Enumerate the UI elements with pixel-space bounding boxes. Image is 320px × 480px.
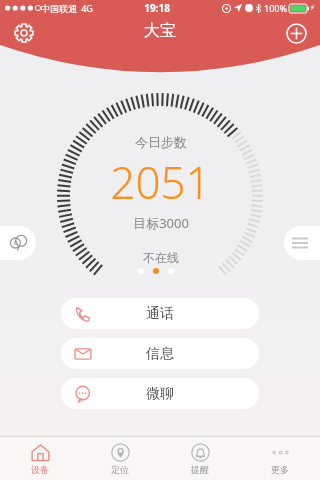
button[interactable]: Settings xyxy=(10,19,38,47)
button[interactable]: 提醒 xyxy=(160,437,240,480)
button[interactable]: 通话 xyxy=(61,298,259,329)
staticText: 中国联通 xyxy=(41,3,77,14)
staticText: 4G xyxy=(81,2,93,14)
staticText: 微聊 xyxy=(146,385,174,403)
staticText: 通话 xyxy=(146,305,174,323)
staticText: 定位 xyxy=(111,464,129,475)
staticText: 目标3000 xyxy=(133,214,189,232)
button[interactable]: Add device xyxy=(282,19,310,47)
button[interactable]: 定位 xyxy=(80,437,160,480)
button[interactable]: 微聊 xyxy=(61,378,259,409)
staticText: 更多 xyxy=(271,464,289,475)
button[interactable]: 设备 xyxy=(0,437,80,480)
staticText: 提醒 xyxy=(191,464,209,475)
staticText: 大宝 xyxy=(144,21,176,41)
staticText: 2051 xyxy=(110,152,211,212)
button[interactable]: 更多 xyxy=(240,437,320,480)
staticText: 信息 xyxy=(146,345,174,363)
button[interactable]: Menu xyxy=(284,226,320,260)
staticText: 100% xyxy=(264,2,287,14)
staticText: 不在线 xyxy=(143,250,179,265)
staticText: 19:18 xyxy=(144,1,170,15)
staticText: ⚡ xyxy=(310,4,315,12)
staticText: 今日步数 xyxy=(135,134,187,150)
button[interactable]: Previous device xyxy=(0,226,36,260)
button[interactable]: 信息 xyxy=(61,338,259,369)
staticText: 设备 xyxy=(31,464,49,475)
